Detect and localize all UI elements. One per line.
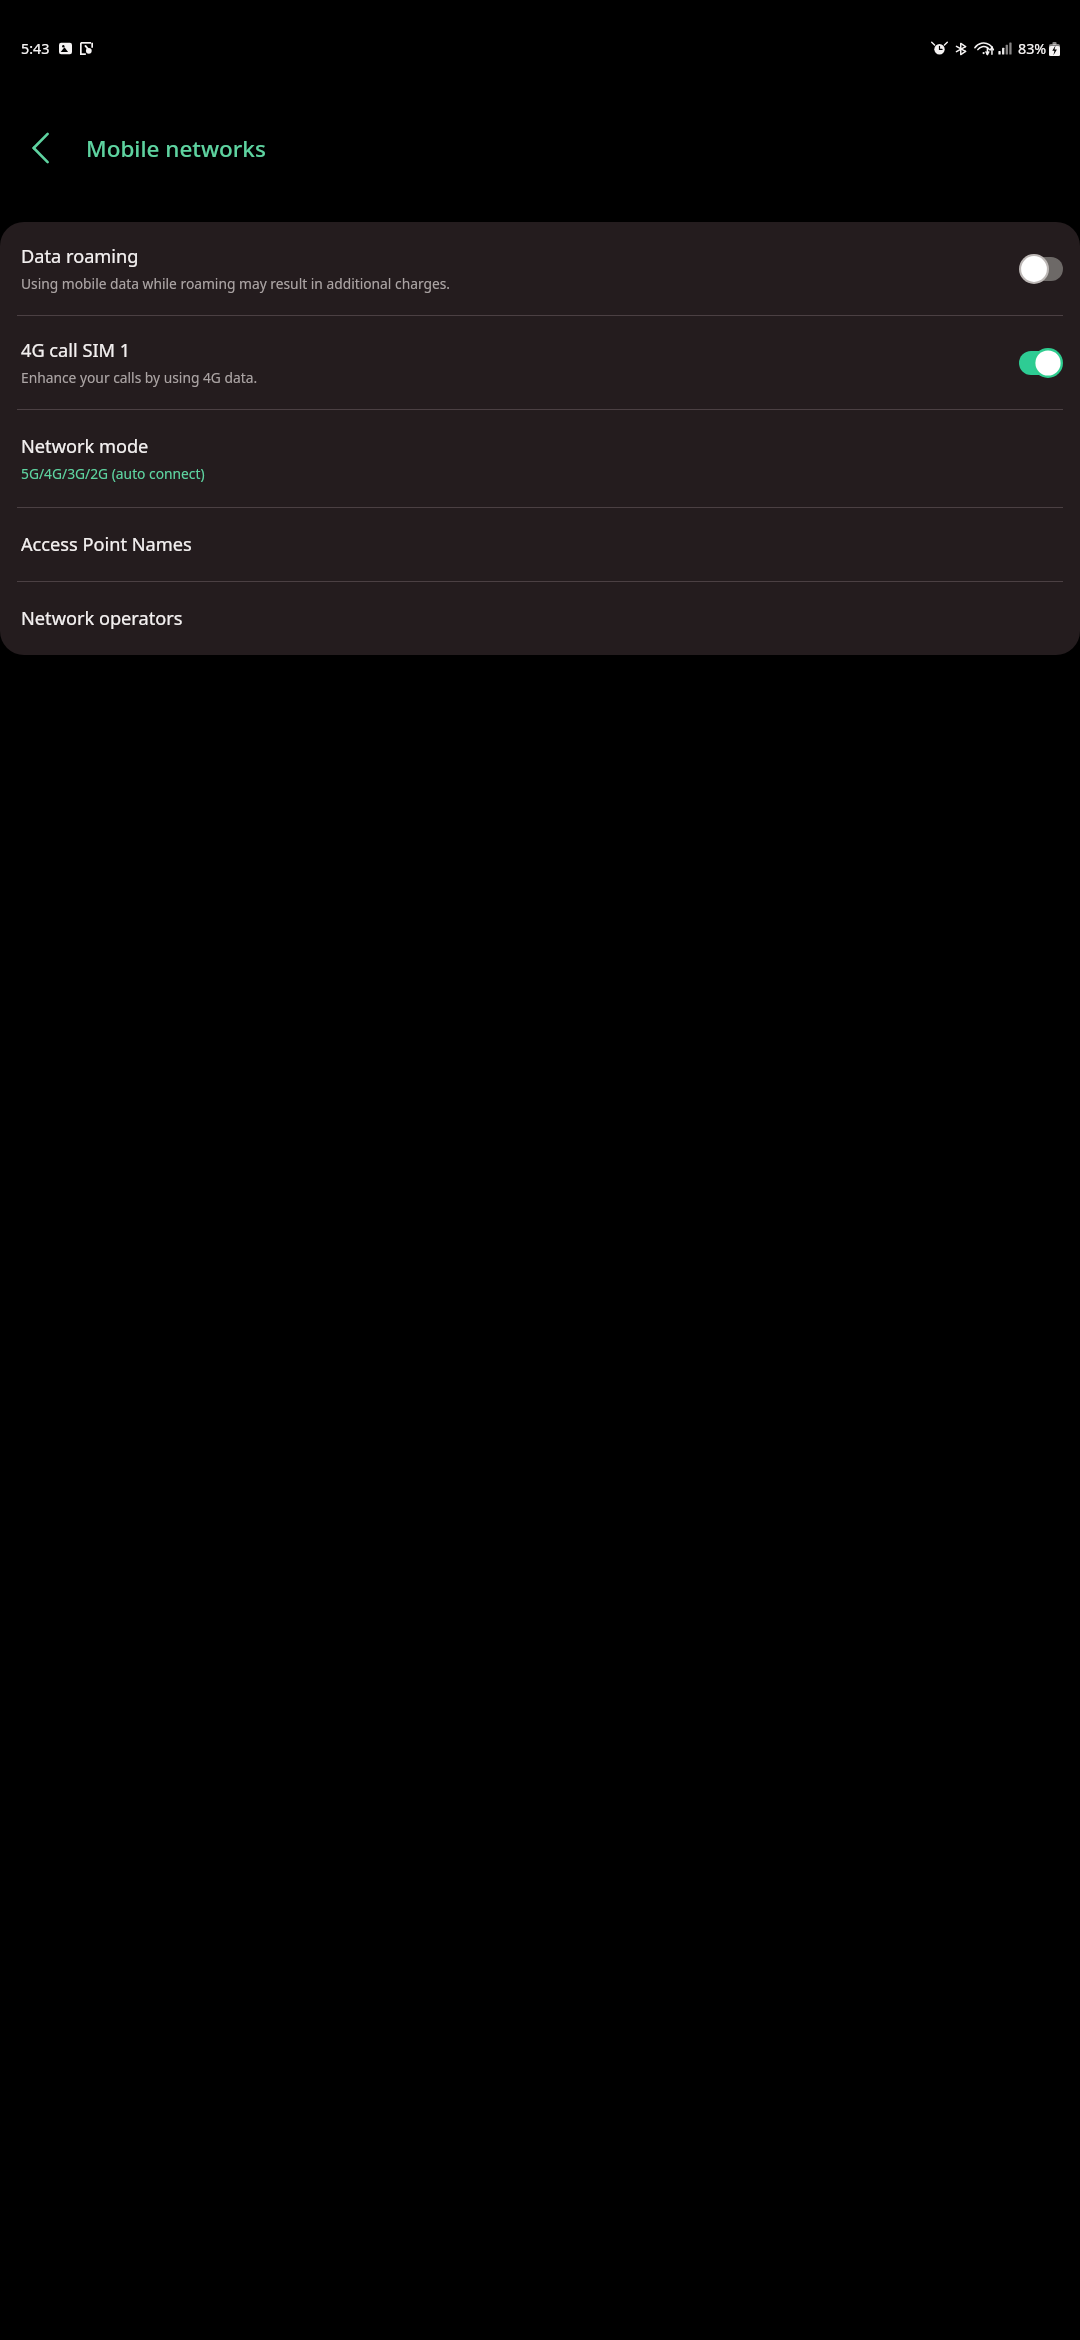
button[interactable]: 4G call SIM 1 <box>0 316 1080 409</box>
staticText: 83% <box>1018 39 1047 58</box>
staticText: Access Point Names <box>21 532 192 557</box>
button[interactable]: Network mode <box>0 410 1080 507</box>
button[interactable]: Access Point Names <box>0 508 1080 581</box>
staticText: 5G/4G/3G/2G (auto connect) <box>21 464 205 483</box>
staticText: Network operators <box>21 606 183 631</box>
button[interactable]: Data roaming <box>0 222 1080 315</box>
staticText: Enhance your calls by using 4G data. <box>21 368 258 387</box>
button[interactable]: Off <box>1019 254 1063 284</box>
staticText: Data roaming <box>21 244 139 269</box>
button[interactable]: Network operators <box>0 582 1080 655</box>
button[interactable]: Back <box>8 116 72 180</box>
button[interactable]: On <box>1019 348 1063 378</box>
staticText: 5:43 <box>21 39 50 58</box>
staticText: Mobile networks <box>86 133 266 164</box>
staticText: Network mode <box>21 434 149 459</box>
staticText: Using mobile data while roaming may resu… <box>21 274 451 293</box>
staticText: 4G call SIM 1 <box>21 338 131 363</box>
